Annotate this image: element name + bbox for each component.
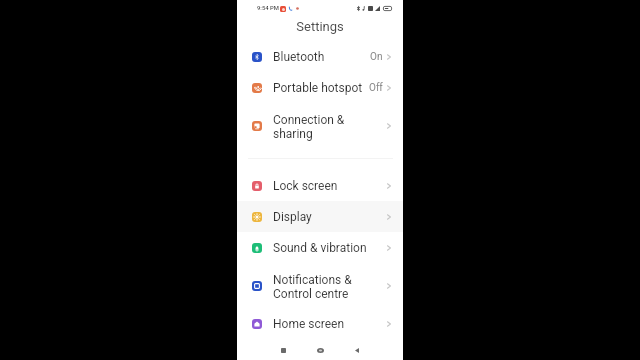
button[interactable]: Portable hotspot <box>237 72 403 103</box>
staticText: Settings <box>296 19 344 34</box>
staticText: Display <box>273 210 387 224</box>
button[interactable]: Lock screen <box>237 170 403 201</box>
staticText: Lock screen <box>273 179 387 193</box>
button[interactable]: Back <box>347 340 367 360</box>
staticText: 9:54 PM <box>257 5 279 12</box>
staticText: Connection & sharing <box>273 113 387 141</box>
staticText: Notifications & Control centre <box>273 273 387 301</box>
button[interactable]: Connection & sharing <box>237 103 403 148</box>
staticText: Portable hotspot <box>273 81 369 95</box>
button[interactable]: Bluetooth <box>237 41 403 72</box>
button[interactable]: Display <box>237 201 403 232</box>
button[interactable]: Sound & vibration <box>237 232 403 263</box>
staticText: Off <box>369 82 383 94</box>
button[interactable]: Recent apps <box>273 340 293 360</box>
staticText: Sound & vibration <box>273 241 387 255</box>
staticText: Bluetooth <box>273 50 370 64</box>
button[interactable]: Notifications & Control centre <box>237 263 403 308</box>
button[interactable]: Home <box>310 340 330 360</box>
button[interactable]: Home screen <box>237 308 403 339</box>
staticText: On <box>370 51 383 63</box>
staticText: Home screen <box>273 317 387 331</box>
